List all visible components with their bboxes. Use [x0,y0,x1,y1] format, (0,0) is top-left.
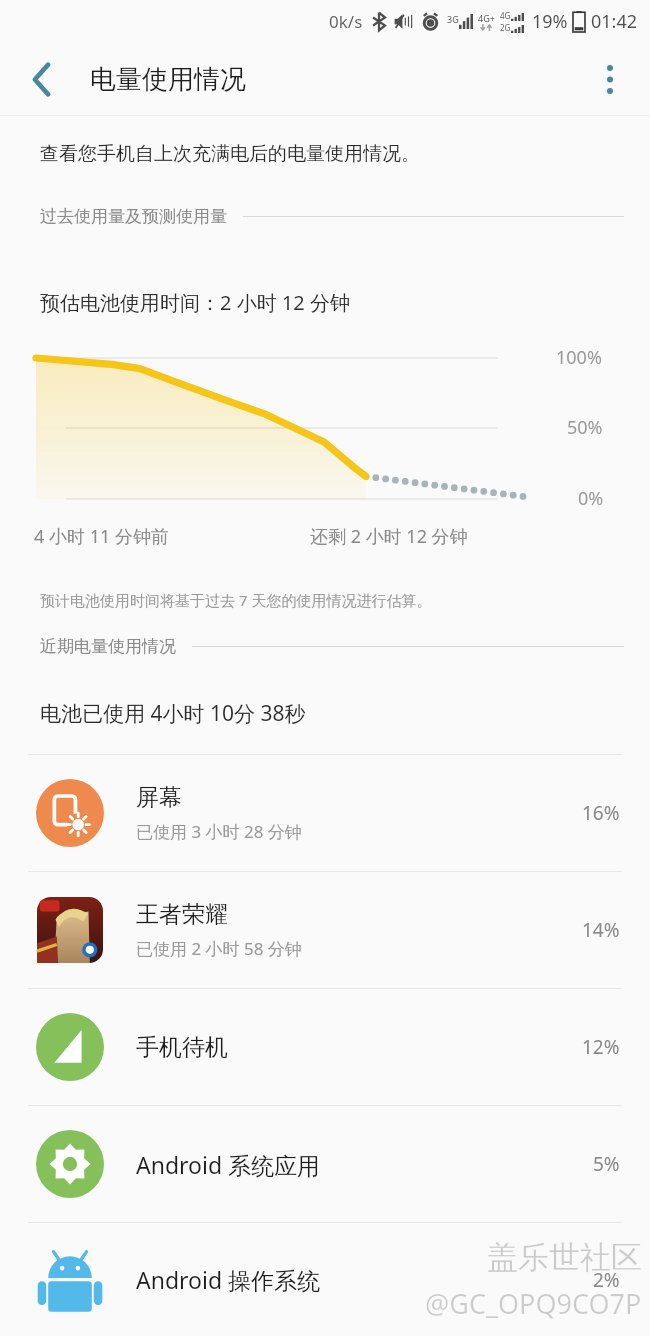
staticText: 3G [447,13,459,25]
staticText: 16% [582,800,620,826]
staticText: 4G [500,10,511,21]
button[interactable]: Android 操作系统 [0,1223,650,1336]
button[interactable]: 屏幕 [0,755,650,871]
staticText: 4G+ [478,12,495,24]
staticText: 王者荣耀 [136,900,228,929]
staticText: 2G [500,22,511,33]
staticText: @GC_OPQ9CO7P [425,1285,642,1322]
button[interactable]: Android 系统应用 [0,1106,650,1222]
staticText: 屏幕 [136,783,182,812]
button[interactable]: 手机待机 [0,989,650,1105]
button[interactable]: Back [12,50,70,108]
staticText: 已使用 3 小时 28 分钟 [136,820,302,843]
staticText: 14% [582,917,620,943]
staticText: 近期电量使用情况 [40,636,176,657]
staticText: 过去使用量及预测使用量 [40,206,227,227]
staticText: 5% [593,1151,620,1177]
staticText: 100% [556,345,602,370]
staticText: 0k/s [329,10,363,33]
staticText: 手机待机 [136,1033,228,1062]
staticText: 01:42 [591,9,638,34]
staticText: 还剩 2 小时 12 分钟 [310,524,468,549]
staticText: 电池已使用 4小时 10分 38秒 [40,699,306,728]
staticText: 4 小时 11 分钟前 [34,524,169,549]
staticText: 50% [567,415,603,440]
staticText: 0% [578,486,604,511]
staticText: 19% [532,9,568,34]
staticText: 电量使用情况 [90,63,246,96]
button[interactable]: 王者荣耀 [0,872,650,988]
staticText: Android 操作系统 [136,1264,321,1295]
staticText: Android 系统应用 [136,1149,321,1180]
staticText: 盖乐世社区 [487,1238,642,1277]
staticText: 预估电池使用时间：2 小时 12 分钟 [40,289,350,316]
staticText: 查看您手机自上次充满电后的电量使用情况。 [40,142,420,166]
staticText: 预计电池使用时间将基于过去 7 天您的使用情况进行估算。 [40,590,432,610]
button[interactable]: More options [582,51,638,107]
staticText: 12% [582,1034,620,1060]
staticText: 已使用 2 小时 58 分钟 [136,937,302,960]
staticText: 2% [593,1267,620,1293]
